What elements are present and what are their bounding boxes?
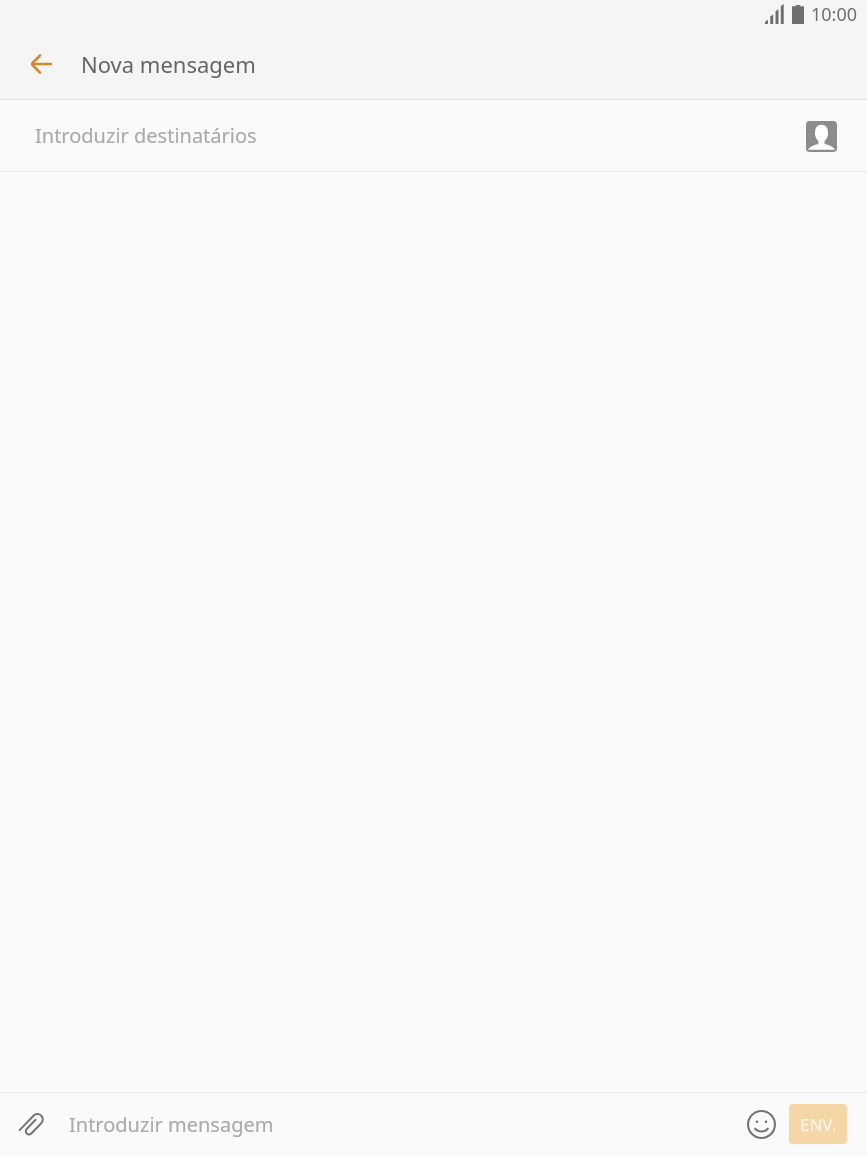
button[interactable]: Back bbox=[9, 32, 73, 96]
button[interactable]: Attach file bbox=[0, 1093, 64, 1156]
button[interactable]: Insert emoticon bbox=[736, 1100, 786, 1149]
staticText: Nova mensagem bbox=[81, 49, 256, 79]
button[interactable]: Select contacts bbox=[797, 112, 845, 160]
button[interactable]: ENV. bbox=[789, 1104, 847, 1144]
staticText: Introduzir mensagem bbox=[69, 1111, 274, 1138]
staticText: ENV. bbox=[800, 1113, 837, 1136]
staticText: 10:00 bbox=[811, 2, 858, 27]
staticText: Introduzir destinatários bbox=[35, 122, 257, 149]
